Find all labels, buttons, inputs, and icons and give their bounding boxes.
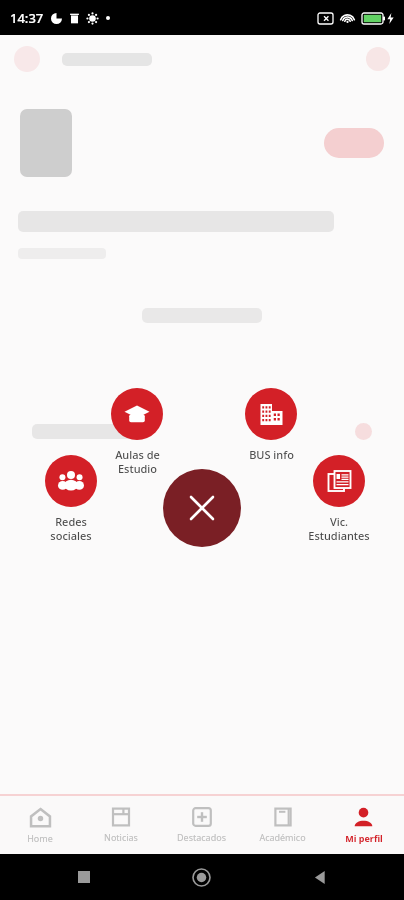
staticText: Académico bbox=[259, 831, 306, 843]
staticText: 14:37 bbox=[10, 9, 44, 27]
button[interactable]: Destacados bbox=[161, 796, 242, 854]
staticText: Home bbox=[27, 832, 53, 844]
button[interactable]: Redes sociales bbox=[28, 455, 114, 543]
staticText: Mi perfil bbox=[345, 832, 383, 844]
button[interactable]: Home bbox=[0, 796, 80, 854]
staticText: Noticias bbox=[104, 831, 138, 843]
staticText: BUS info bbox=[249, 447, 294, 462]
button[interactable]: Cerrar menú bbox=[163, 469, 241, 547]
button[interactable]: Académico bbox=[242, 796, 323, 854]
staticText: Destacados bbox=[177, 831, 226, 843]
staticText: Redes sociales bbox=[50, 514, 92, 543]
button[interactable]: Mi perfil bbox=[323, 796, 404, 854]
staticText: Vic. Estudiantes bbox=[308, 514, 370, 543]
button[interactable]: BUS info bbox=[228, 388, 314, 462]
button[interactable]: Noticias bbox=[80, 796, 161, 854]
button[interactable]: Vic. Estudiantes bbox=[296, 455, 382, 543]
button[interactable]: Aulas de Estudio bbox=[94, 388, 180, 476]
staticText: Aulas de Estudio bbox=[115, 447, 160, 476]
